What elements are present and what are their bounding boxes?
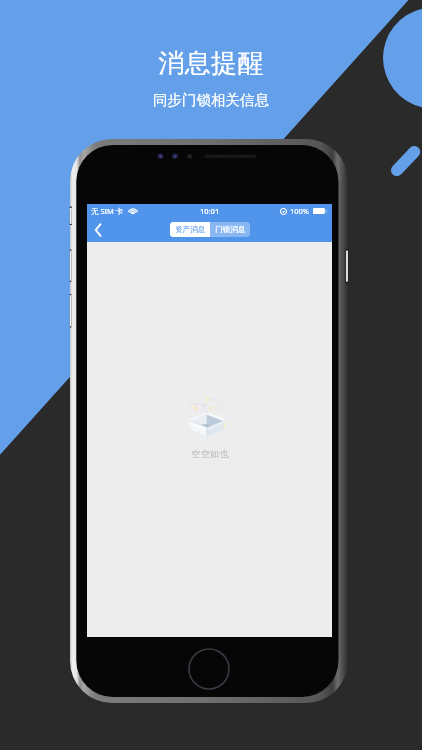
button[interactable]: Back: [89, 221, 107, 239]
staticText: 同步门锁相关信息: [153, 91, 269, 109]
button[interactable]: Home: [188, 648, 230, 690]
staticText: 10:01: [200, 206, 220, 216]
staticText: 无 SIM 卡: [91, 206, 124, 216]
staticText: 门锁消息: [215, 225, 246, 235]
button[interactable]: 资产消息: [170, 222, 210, 237]
button[interactable]: 门锁消息: [210, 222, 250, 237]
staticText: 100%: [290, 206, 310, 216]
staticText: 空空如也: [191, 448, 229, 459]
staticText: 消息提醒: [158, 47, 264, 80]
staticText: 资产消息: [175, 225, 206, 235]
